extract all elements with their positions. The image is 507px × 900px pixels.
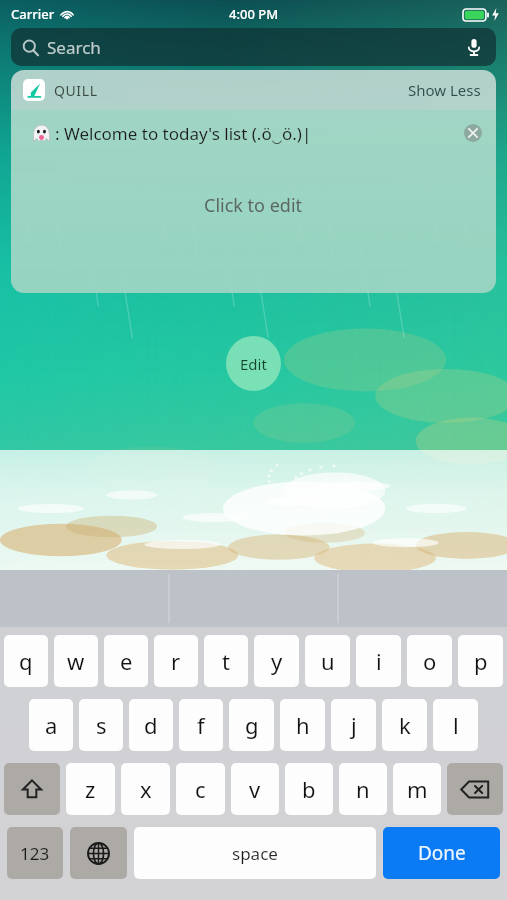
button[interactable]: Voice search [463,36,485,58]
staticText: w [67,646,85,676]
button[interactable]: 123 [7,827,63,879]
staticText: i [376,646,382,676]
staticText: Click to edit [204,193,303,218]
button[interactable]: c [176,763,225,815]
button[interactable]: m [393,763,441,815]
staticText: e [120,646,133,676]
staticText: f [197,710,205,740]
button[interactable]: v [231,763,279,815]
staticText: l [453,710,459,740]
button[interactable]: Done [383,827,500,879]
staticText: j [351,710,357,740]
button[interactable]: i [356,635,401,687]
button[interactable]: x [121,763,170,815]
button[interactable]: w [54,635,98,687]
staticText: Show Less [408,80,481,100]
button[interactable]: g [229,699,274,751]
staticText: d [144,710,158,740]
staticText: : Welcome to today's list (.ö‿ö.)| [55,122,312,145]
staticText: c [195,774,206,804]
button[interactable]: u [305,635,350,687]
button[interactable]: d [129,699,173,751]
staticText: Edit [240,354,267,374]
button[interactable]: Switch keyboard language [70,827,127,879]
button[interactable]: s [79,699,123,751]
staticText: k [399,710,411,740]
staticText: b [302,774,316,804]
button[interactable]: e [104,635,148,687]
staticText: QUILL [54,81,98,100]
button[interactable]: Show Less [405,77,484,103]
staticText: q [19,646,33,676]
staticText: x [140,774,152,804]
staticText: m [407,774,428,804]
staticText: n [356,774,370,804]
staticText: r [171,646,181,676]
staticText: y [271,646,283,676]
button[interactable]: r [154,635,198,687]
staticText: p [474,646,488,676]
staticText: 4:00 PM [229,5,279,23]
staticText: v [249,774,261,804]
staticText: a [45,710,58,740]
staticText: o [423,646,437,676]
button[interactable]: y [254,635,299,687]
button[interactable]: n [339,763,387,815]
button[interactable]: l [433,699,478,751]
button[interactable]: t [204,635,248,687]
button[interactable]: Edit [226,336,281,391]
button[interactable]: Clear text [464,124,482,142]
staticText: u [321,646,335,676]
button[interactable]: Backspace [447,763,503,815]
staticText: g [245,710,259,740]
button[interactable]: space [134,827,376,879]
button[interactable]: a [29,699,73,751]
staticText: h [296,710,310,740]
staticText: Done [418,840,466,866]
button[interactable]: : Welcome to today's list (.ö‿ö.)| [11,110,496,156]
staticText: s [96,710,107,740]
button[interactable]: f [179,699,223,751]
button[interactable]: z [66,763,115,815]
button[interactable]: q [4,635,48,687]
button[interactable]: b [285,763,333,815]
button[interactable]: Shift [4,763,60,815]
staticText: 123 [20,842,50,865]
staticText: z [85,774,96,804]
button[interactable]: o [407,635,452,687]
staticText: Carrier [11,5,55,23]
button[interactable]: Search [11,28,496,66]
button[interactable]: p [458,635,503,687]
staticText: Search [47,36,101,59]
staticText: t [222,646,230,676]
button[interactable]: h [280,699,325,751]
button[interactable]: j [331,699,376,751]
staticText: space [232,842,278,865]
button[interactable]: k [382,699,427,751]
